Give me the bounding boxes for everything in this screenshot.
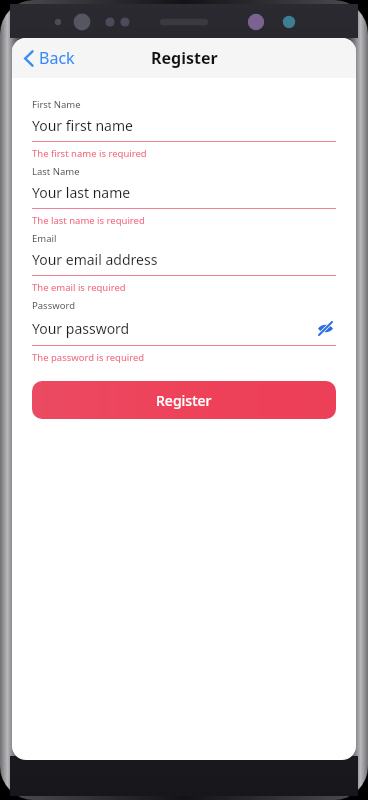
staticText: The email is required xyxy=(32,281,126,294)
staticText: Register xyxy=(156,391,212,410)
staticText: First Name xyxy=(32,98,81,111)
button[interactable]: Show password xyxy=(314,317,336,339)
staticText: Back xyxy=(39,47,75,69)
staticText: Your email address xyxy=(32,250,336,269)
staticText: Your password xyxy=(32,319,314,338)
staticText: The first name is required xyxy=(32,147,147,160)
staticText: Password xyxy=(32,299,75,312)
staticText: Your last name xyxy=(32,183,336,202)
staticText: Email xyxy=(32,232,57,245)
button[interactable]: Back xyxy=(18,43,81,73)
staticText: Last Name xyxy=(32,165,80,178)
staticText: Your first name xyxy=(32,116,336,135)
staticText: The password is required xyxy=(32,351,145,364)
button[interactable]: Register xyxy=(32,381,336,419)
staticText: Register xyxy=(151,47,218,69)
staticText: The last name is required xyxy=(32,214,145,227)
